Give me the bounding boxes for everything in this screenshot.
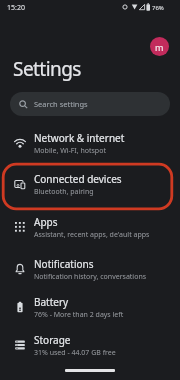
staticText: Mobile, Wi-FI, hotspot bbox=[34, 146, 106, 156]
button[interactable]: Search settings bbox=[10, 92, 170, 116]
staticText: 76% bbox=[152, 4, 164, 12]
staticText: Notifications bbox=[34, 257, 94, 271]
staticText: 76% - More than 2 days left bbox=[34, 310, 124, 320]
staticText: 15:20 bbox=[7, 3, 25, 13]
button[interactable]: m bbox=[150, 37, 169, 56]
button[interactable]: Battery bbox=[0, 287, 180, 327]
button[interactable]: Apps bbox=[0, 207, 180, 247]
staticText: Battery bbox=[34, 295, 69, 309]
button[interactable]: Connected devices bbox=[0, 164, 180, 204]
staticText: 31% used - 44.07 GB free bbox=[34, 348, 116, 358]
button[interactable]: Notifications bbox=[0, 249, 180, 289]
staticText: Bluetooth, pairing bbox=[34, 187, 94, 197]
staticText: m bbox=[155, 41, 164, 53]
staticText: Settings bbox=[13, 56, 81, 82]
staticText: Assistant, recent apps, de'ault apps bbox=[34, 230, 150, 240]
staticText: Storage bbox=[34, 333, 71, 347]
staticText: Network & internet bbox=[34, 131, 125, 145]
button[interactable]: Storage bbox=[0, 325, 180, 365]
staticText: Notification history, conversations bbox=[34, 272, 147, 282]
button[interactable]: Network & internet bbox=[0, 123, 180, 163]
staticText: Search settings bbox=[34, 99, 88, 109]
staticText: Connected devices bbox=[34, 172, 122, 186]
staticText: Apps bbox=[34, 215, 58, 229]
